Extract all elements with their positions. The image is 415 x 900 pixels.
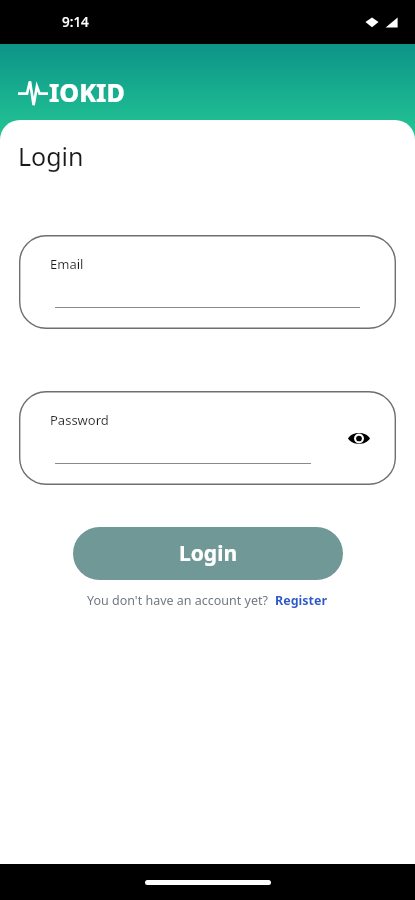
- staticText: Password: [50, 411, 109, 429]
- staticText: Login: [18, 139, 84, 173]
- button[interactable]: Login: [73, 527, 343, 580]
- staticText: Email: [50, 255, 84, 273]
- staticText: IOKID: [49, 75, 125, 109]
- staticText: You don't have an account yet?: [87, 592, 268, 609]
- staticText: 9:14: [62, 13, 89, 31]
- button[interactable]: Email: [19, 235, 396, 329]
- staticText: Register: [275, 592, 328, 609]
- button[interactable]: Password: [19, 391, 396, 485]
- button[interactable]: Register: [275, 592, 328, 609]
- staticText: Login: [179, 539, 238, 568]
- button[interactable]: Show password: [344, 423, 374, 453]
